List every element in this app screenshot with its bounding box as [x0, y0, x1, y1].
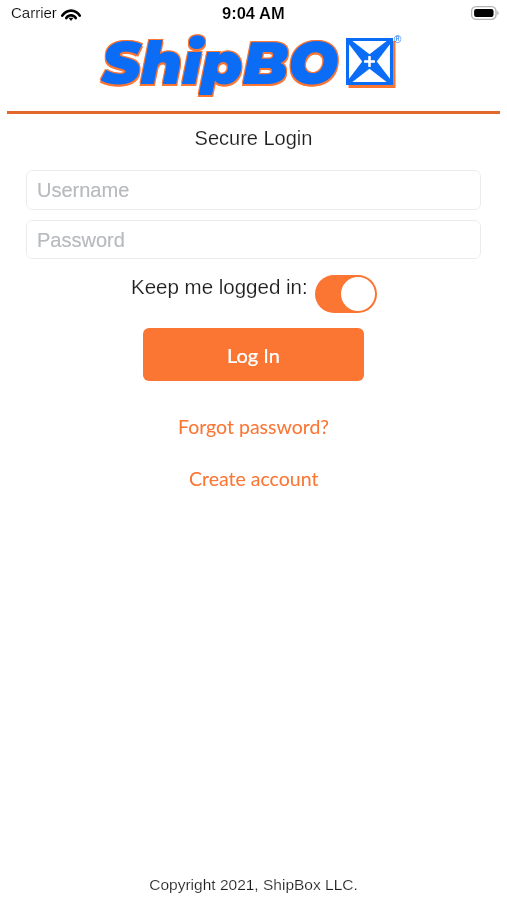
button[interactable]: Username — [26, 170, 481, 210]
staticText: Carrier — [11, 4, 57, 21]
staticText: ShipBO — [102, 27, 339, 99]
staticText: ShipBO — [101, 29, 338, 101]
staticText: Secure Login — [0, 127, 507, 149]
staticText: ShipBO — [103, 26, 340, 98]
staticText: ShipBO — [103, 29, 340, 101]
button[interactable]: Forgot password? — [178, 415, 330, 438]
staticText: ShipBO — [101, 26, 338, 98]
staticText: 9:04 AM — [222, 4, 285, 22]
staticText: Log In — [227, 343, 280, 367]
staticText: Forgot password? — [178, 415, 330, 438]
staticText: Password — [37, 229, 125, 251]
staticText: Copyright 2021, ShipBox LLC. — [0, 876, 507, 893]
button[interactable]: Create account — [189, 467, 319, 490]
staticText: Create account — [189, 467, 319, 490]
staticText: Keep me logged in: — [131, 275, 308, 298]
button[interactable]: Log In — [143, 328, 364, 381]
staticText: ® — [394, 34, 402, 45]
button[interactable]: Password — [26, 220, 481, 259]
button[interactable]: Keep me logged in — [315, 275, 377, 313]
staticText: Username — [37, 179, 130, 201]
